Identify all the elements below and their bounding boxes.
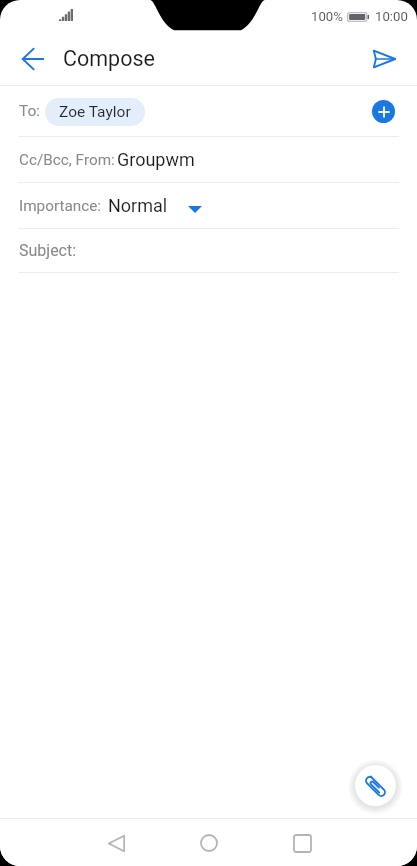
button[interactable]: Send: [363, 38, 405, 80]
button[interactable]: Add recipient: [372, 100, 395, 123]
button[interactable]: Home: [179, 821, 239, 865]
staticText: Normal: [108, 195, 168, 216]
staticText: Groupwm: [117, 149, 195, 170]
staticText: Importance:: [19, 197, 102, 215]
staticText: Subject:: [19, 241, 77, 260]
button[interactable]: Cc/Bcc, From:: [0, 137, 417, 182]
staticText: Compose: [63, 46, 155, 71]
button[interactable]: Importance:: [0, 183, 417, 228]
button[interactable]: Recent apps: [272, 821, 332, 865]
staticText: 100%: [311, 9, 343, 24]
staticText: Cc/Bcc, From:: [19, 151, 115, 169]
button[interactable]: Attach file: [355, 765, 396, 806]
button[interactable]: Back: [86, 821, 146, 865]
staticText: Zoe Taylor: [59, 103, 131, 121]
button[interactable]: Back: [12, 38, 54, 80]
staticText: To:: [19, 102, 41, 120]
staticText: 10:00: [375, 9, 408, 24]
button[interactable]: Zoe Taylor: [45, 98, 145, 126]
button[interactable]: Subject:: [0, 229, 417, 272]
